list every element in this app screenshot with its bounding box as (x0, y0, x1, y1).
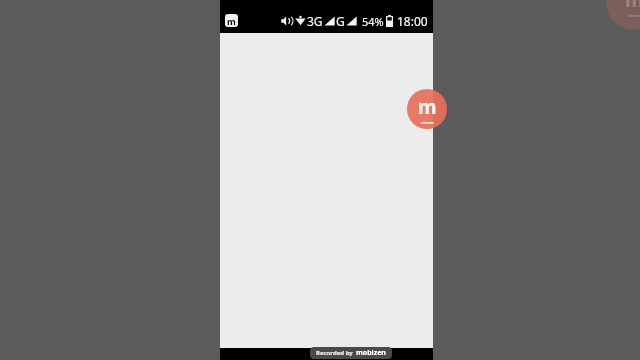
staticText: m (418, 94, 437, 120)
staticText: obizen (628, 13, 640, 18)
button[interactable]: Mobizen notification (225, 14, 238, 27)
staticText: 54% (362, 14, 384, 29)
staticText: m (227, 15, 236, 27)
staticText: 18:00 (397, 13, 428, 29)
button[interactable]: Mobizen recorder menu (407, 89, 447, 129)
staticText: Recorded by (316, 349, 353, 357)
staticText: obizen (421, 120, 435, 125)
staticText: G (336, 13, 345, 29)
staticText: 3G (307, 13, 323, 29)
staticText: mobizen (356, 348, 386, 358)
staticText: m (625, 0, 640, 13)
